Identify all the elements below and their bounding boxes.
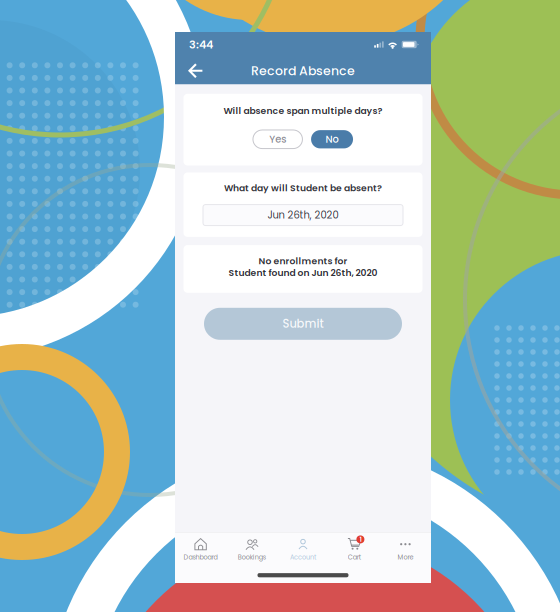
staticText: Will absence span multiple days?: [223, 104, 382, 117]
button[interactable]: Yes: [253, 130, 302, 149]
button[interactable]: 1: [329, 533, 380, 566]
staticText: Cart: [348, 553, 361, 562]
staticText: More: [397, 553, 413, 562]
staticText: Yes: [269, 132, 286, 146]
staticText: What day will Student be absent?: [224, 182, 382, 195]
staticText: Record Absence: [251, 62, 355, 79]
staticText: Submit: [282, 316, 323, 332]
staticText: Jun 26th, 2020: [267, 208, 338, 222]
button[interactable]: Back: [182, 58, 209, 84]
staticText: Bookings: [238, 553, 266, 562]
staticText: 1: [359, 535, 361, 544]
button[interactable]: Submit: [204, 308, 402, 340]
button[interactable]: Dashboard: [175, 533, 226, 566]
staticText: Student found on Jun 26th, 2020: [228, 266, 377, 279]
button[interactable]: Bookings: [226, 533, 277, 566]
staticText: 3:44: [189, 37, 213, 52]
button[interactable]: No: [311, 130, 353, 148]
button[interactable]: Account: [277, 533, 329, 566]
button[interactable]: More: [380, 533, 431, 566]
staticText: No enrollments for: [258, 255, 347, 267]
staticText: Dashboard: [184, 553, 218, 562]
staticText: No: [326, 132, 339, 146]
staticText: Account: [290, 553, 316, 562]
